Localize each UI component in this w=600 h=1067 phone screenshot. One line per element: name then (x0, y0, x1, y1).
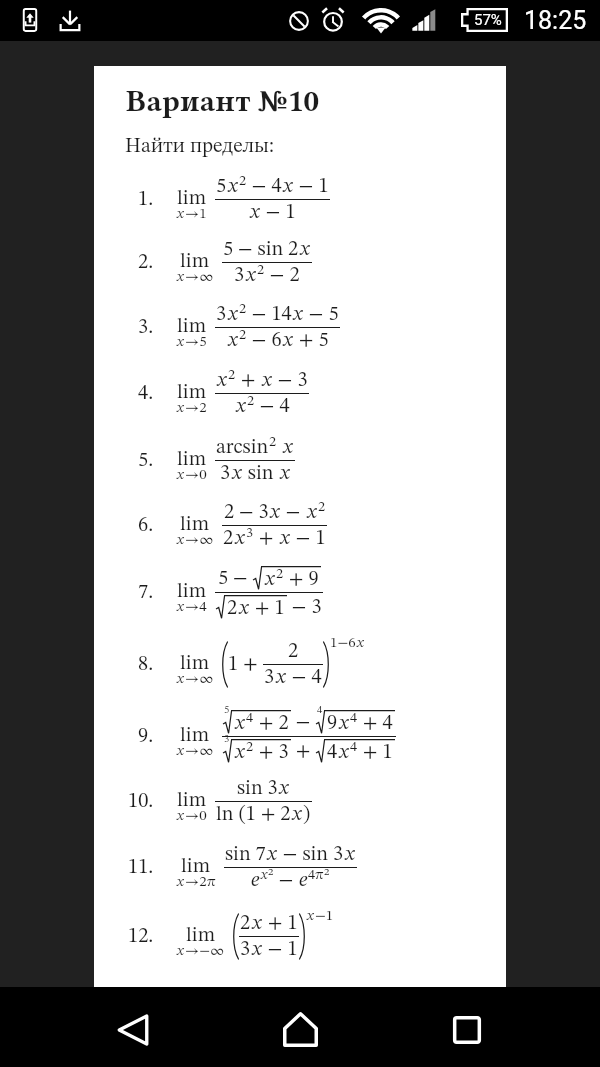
staticText: 𝑥 (176, 401, 185, 416)
staticText: 𝑥 (234, 742, 246, 763)
staticText: lim (177, 449, 207, 470)
staticText: − 4 (247, 176, 282, 197)
staticText: 𝑥 (176, 270, 185, 285)
staticText: 3 (234, 265, 245, 286)
button[interactable]: Recent apps (432, 995, 502, 1065)
button[interactable]: Вариант №10 (94, 66, 506, 987)
staticText: + 1 (358, 742, 393, 763)
staticText: 𝑥 (176, 744, 185, 759)
staticText: 𝑥 (176, 672, 185, 687)
staticText: 57% (474, 11, 502, 29)
staticText: lim (177, 581, 207, 602)
staticText: 5 (216, 176, 227, 197)
staticText: 𝑥 (269, 502, 281, 523)
staticText: + (236, 370, 261, 391)
staticText: − 1 (263, 939, 298, 960)
staticText: 2 (227, 598, 238, 619)
staticText: 𝑥 (251, 913, 263, 934)
staticText: 2 (318, 500, 326, 514)
staticText: lim (180, 251, 210, 272)
staticText: lim (177, 188, 207, 209)
staticText: lim (180, 653, 210, 674)
staticText: − 1 (291, 528, 326, 549)
staticText: 2 (223, 528, 234, 549)
staticText: − 3 (273, 370, 308, 391)
staticText: 10. (128, 791, 154, 812)
staticText: lim (177, 316, 207, 337)
staticText: 𝑥 (261, 370, 273, 391)
staticText: 𝑥 (282, 437, 294, 458)
staticText: 𝑥 (356, 636, 365, 651)
staticText: + 3 (254, 742, 289, 763)
staticText: 𝑒 (251, 870, 260, 891)
staticText: →1 (185, 207, 207, 222)
staticText: 1 + (228, 654, 263, 675)
staticText: lim (177, 382, 207, 403)
staticText: 5 − sin 2 (223, 239, 299, 260)
staticText: ln (1 + 2 (216, 804, 291, 825)
staticText: 𝑥 (249, 202, 261, 223)
staticText: 𝑥 (176, 468, 185, 483)
staticText: lim (177, 790, 207, 811)
staticText: 𝑥 (227, 330, 239, 351)
staticText: sin 3 (237, 778, 278, 799)
staticText: −1 (315, 909, 334, 924)
staticText: 3 (264, 667, 275, 688)
staticText: 4 (246, 711, 254, 725)
staticText: →0 (185, 468, 207, 483)
staticText: 𝑥 (275, 667, 287, 688)
staticText: 2 (247, 394, 255, 408)
staticText: 𝑥 (291, 804, 303, 825)
staticText: − 1 (261, 202, 296, 223)
staticText: 𝑥 (306, 909, 315, 924)
staticText: 𝑥 (227, 176, 239, 197)
staticText: − (291, 712, 316, 733)
staticText: + (291, 741, 316, 762)
staticText: + 4 (358, 713, 393, 734)
staticText: ) (303, 804, 311, 825)
staticText: sin (243, 463, 279, 484)
staticText: 9 (327, 713, 338, 734)
staticText: →0 (185, 809, 207, 824)
staticText: + 1 (263, 913, 298, 934)
staticText: 3 (216, 304, 227, 325)
staticText: − 2 (265, 265, 300, 286)
staticText: →2π (185, 875, 216, 890)
staticText: 4 (317, 705, 323, 716)
staticText: 𝑥 (279, 528, 291, 549)
staticText: 18:25 (524, 6, 587, 35)
staticText: 5. (138, 450, 154, 471)
staticText: − sin 3 (278, 844, 344, 865)
staticText: 𝑥 (338, 742, 350, 763)
staticText: 𝑥 (279, 463, 291, 484)
staticText: 𝑥 (299, 239, 311, 260)
staticText: lim (181, 856, 211, 877)
staticText: 𝑥 (176, 600, 185, 615)
staticText: 2 (257, 263, 265, 277)
staticText: 1. (138, 189, 154, 210)
staticText: 𝑥 (245, 265, 257, 286)
staticText: 4 (350, 740, 358, 754)
staticText: lim (180, 725, 210, 746)
staticText: 𝑥 (176, 944, 185, 959)
staticText: arcsin (216, 437, 269, 458)
staticText: →∞ (185, 270, 214, 285)
staticText: 2 (276, 567, 284, 581)
staticText: sin 7 (225, 844, 266, 865)
staticText: 𝑥 (282, 176, 294, 197)
staticText: 𝑥 (227, 304, 239, 325)
staticText: 𝑥 (235, 396, 247, 417)
staticText: Найти пределы: (125, 136, 274, 157)
button[interactable]: Home (265, 994, 335, 1064)
staticText: 𝑥 (176, 335, 185, 350)
staticText: 𝑥 (251, 939, 263, 960)
staticText: 2 (228, 368, 236, 382)
staticText: 3 (240, 939, 251, 960)
staticText: 5 − (218, 568, 253, 589)
button[interactable]: Back (98, 995, 168, 1065)
staticText: 8. (138, 654, 154, 675)
staticText: 𝑥 (266, 844, 278, 865)
staticText: →∞ (185, 744, 214, 759)
staticText: − (274, 870, 299, 891)
